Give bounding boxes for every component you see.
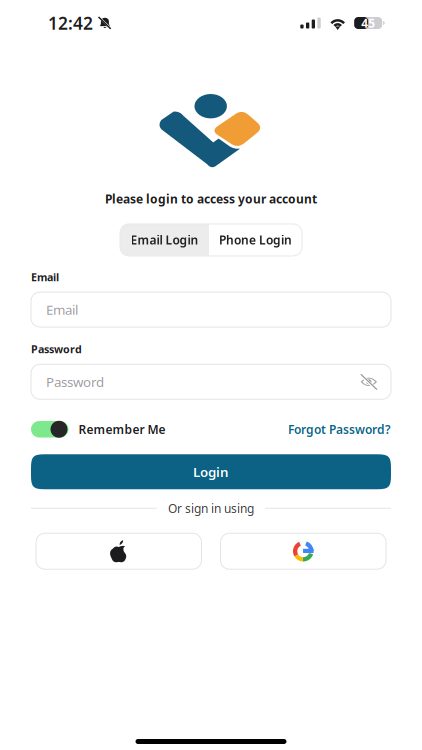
button[interactable]: Login [31, 454, 391, 489]
staticText: Email [31, 270, 59, 284]
staticText: Email [46, 301, 78, 318]
staticText: Password [31, 342, 82, 356]
staticText: 45 [361, 15, 375, 31]
staticText: Forgot Password? [288, 421, 391, 437]
button[interactable]: Email Login [120, 224, 209, 256]
button[interactable]: Phone Login [209, 224, 302, 256]
staticText: Login [193, 463, 229, 481]
staticText: Phone Login [219, 232, 292, 248]
staticText: Please login to access your account [105, 191, 317, 207]
staticText: Password [46, 373, 104, 391]
button[interactable]: Remember Me [31, 419, 165, 439]
staticText: Email Login [130, 232, 198, 248]
staticText: Or sign in using [168, 500, 254, 516]
button[interactable]: Sign in with Apple [36, 533, 201, 569]
button[interactable]: Sign in with Google [220, 533, 386, 569]
staticText: 12:42 [48, 11, 93, 34]
button[interactable]: Forgot Password? [288, 421, 391, 437]
staticText: Remember Me [78, 421, 165, 437]
